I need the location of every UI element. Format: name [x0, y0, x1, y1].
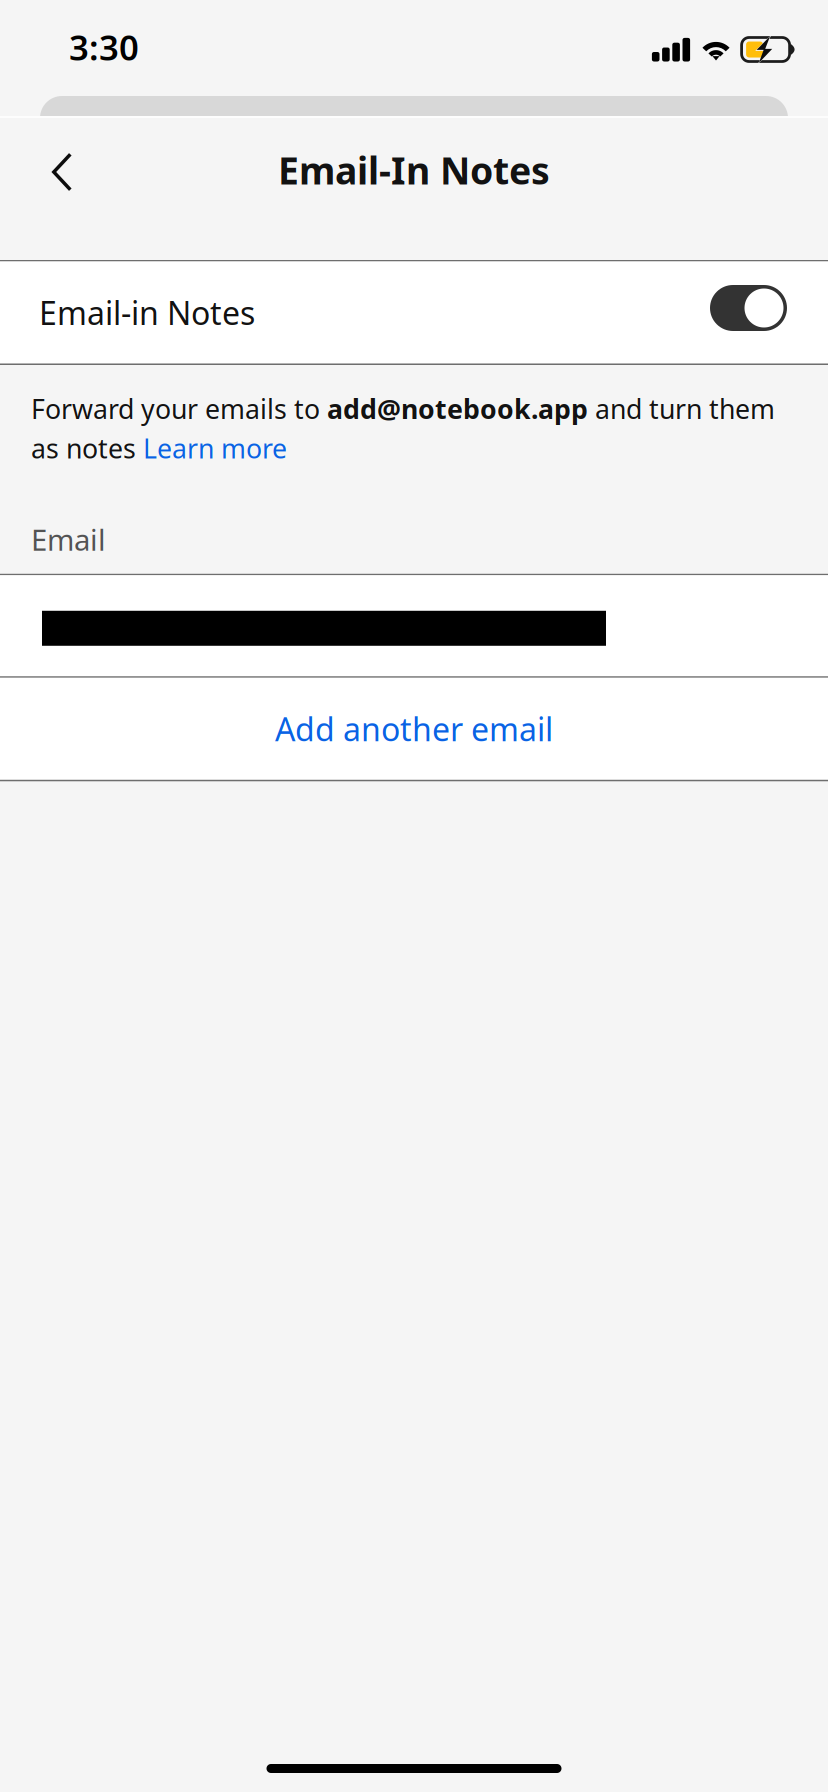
staticText: Email-in Notes — [39, 291, 255, 334]
button[interactable]: Email-in Notes — [0, 261, 828, 363]
staticText: Learn more — [143, 430, 287, 466]
staticText: 3:30 — [69, 24, 139, 70]
button[interactable]: Back — [29, 134, 95, 206]
staticText: Email-In Notes — [278, 145, 550, 195]
staticText: Add another email — [275, 707, 553, 750]
staticText: as notes — [31, 430, 143, 466]
button[interactable]: Add another email — [0, 678, 828, 780]
staticText: Email — [31, 520, 106, 559]
button[interactable]: Email address — [0, 575, 828, 676]
button[interactable]: Learn more — [143, 430, 287, 466]
staticText: Forward your emails to add@notebook.app … — [31, 391, 775, 426]
